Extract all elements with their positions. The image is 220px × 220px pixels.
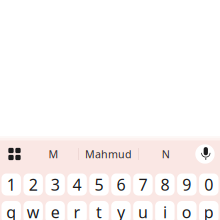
button[interactable]: 4	[67, 173, 87, 195]
button[interactable]: 3	[45, 173, 65, 195]
staticText: 2	[29, 174, 38, 195]
button[interactable]: y	[111, 201, 131, 220]
staticText: q	[6, 201, 16, 220]
staticText: u	[138, 201, 148, 220]
button[interactable]: 8	[155, 173, 175, 195]
button[interactable]: w	[23, 201, 43, 220]
button[interactable]: N	[141, 141, 191, 167]
staticText: 1	[7, 174, 16, 195]
staticText: 9	[182, 174, 191, 195]
button[interactable]: o	[177, 201, 196, 220]
button[interactable]: u	[133, 201, 153, 220]
button[interactable]: 2	[23, 173, 43, 195]
button[interactable]: t	[89, 201, 109, 220]
button[interactable]: 1	[1, 173, 21, 195]
staticText: 6	[116, 174, 125, 195]
staticText: Mahmud	[85, 147, 132, 161]
staticText: t	[96, 201, 102, 220]
button[interactable]: Dictate	[192, 141, 218, 167]
button[interactable]: q	[1, 201, 21, 220]
staticText: 7	[138, 174, 147, 195]
button[interactable]: Next keyboard	[0, 141, 29, 167]
staticText: w	[27, 201, 40, 220]
button[interactable]: p	[199, 201, 218, 220]
staticText: 8	[160, 174, 169, 195]
button[interactable]: 5	[89, 173, 109, 195]
staticText: 5	[94, 174, 103, 195]
staticText: M	[48, 147, 58, 161]
button[interactable]: 9	[177, 173, 196, 195]
staticText: e	[51, 201, 60, 220]
button[interactable]: i	[155, 201, 175, 220]
button[interactable]: r	[67, 201, 87, 220]
staticText: 4	[73, 174, 82, 195]
button[interactable]: Mahmud	[80, 141, 136, 167]
staticText: i	[163, 201, 167, 220]
button[interactable]: 6	[111, 173, 131, 195]
button[interactable]: M	[30, 141, 76, 167]
staticText: 0	[204, 174, 213, 195]
staticText: N	[162, 147, 170, 161]
button[interactable]: 0	[199, 173, 218, 195]
staticText: o	[182, 201, 192, 220]
staticText: p	[204, 201, 214, 220]
button[interactable]: e	[45, 201, 65, 220]
staticText: 3	[51, 174, 60, 195]
staticText: r	[74, 201, 81, 220]
staticText: y	[117, 201, 125, 220]
button[interactable]: 7	[133, 173, 153, 195]
